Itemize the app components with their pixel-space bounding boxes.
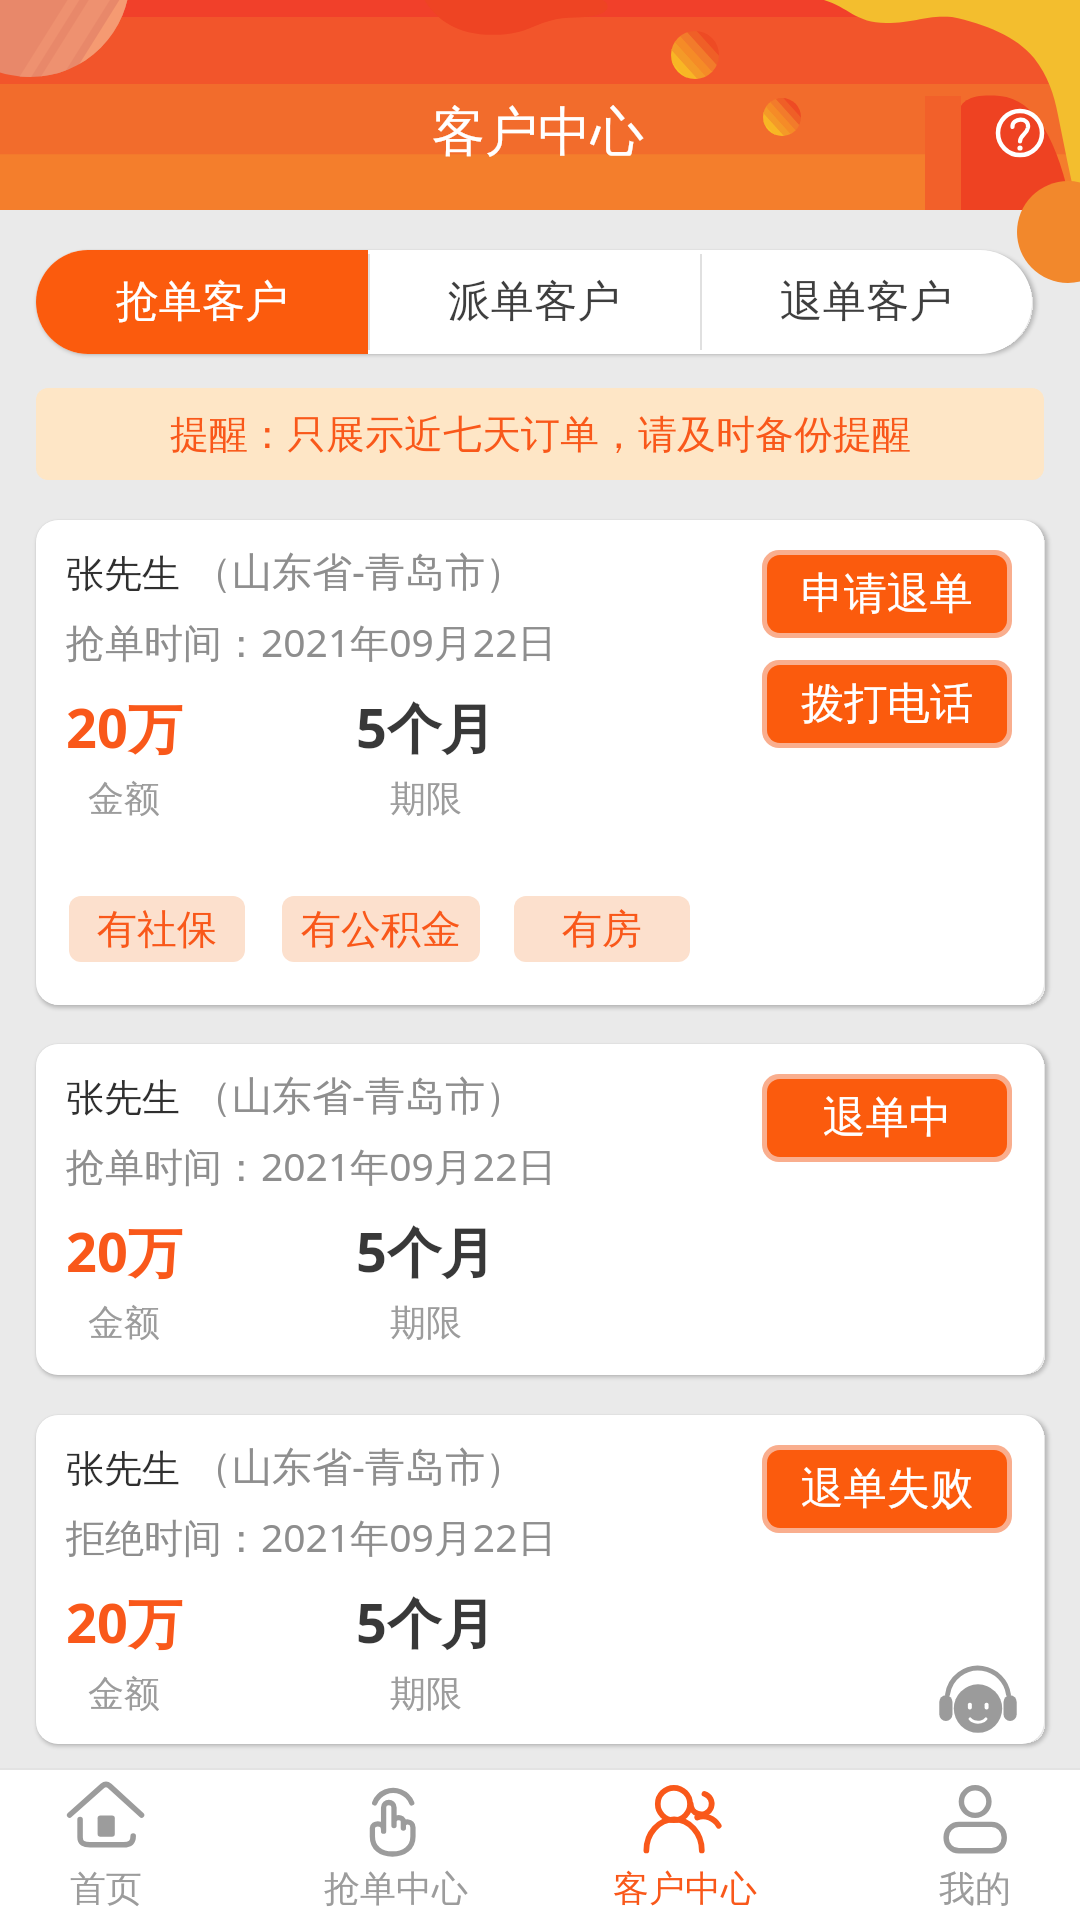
staticText: 期限 xyxy=(390,1300,462,1345)
button[interactable]: 首页 xyxy=(0,1770,211,1920)
button[interactable]: Help xyxy=(984,97,1056,169)
button[interactable]: 有公积金 xyxy=(301,896,461,962)
staticText: 期限 xyxy=(390,776,462,821)
staticText: 提醒：只展示近七天订单，请及时备份提醒 xyxy=(170,410,911,459)
staticText: 20万 xyxy=(66,690,182,764)
button[interactable]: 退单客户 xyxy=(700,250,1032,354)
button[interactable]: 退单失败 xyxy=(767,1450,1007,1528)
staticText: 20万 xyxy=(66,1585,182,1659)
staticText: 有房 xyxy=(562,904,642,954)
staticText: （山东省-青岛市） xyxy=(192,1438,525,1493)
button[interactable]: 有房 xyxy=(533,896,671,962)
staticText: 张先生 xyxy=(66,1074,180,1122)
button[interactable]: 派单客户 xyxy=(368,250,700,354)
staticText: 张先生 xyxy=(66,550,180,598)
staticText: 拨打电话 xyxy=(801,677,973,731)
staticText: 客户中心 xyxy=(432,99,644,166)
button[interactable]: 申请退单 xyxy=(767,555,1007,633)
button[interactable]: 我的 xyxy=(869,1770,1080,1920)
staticText: 我的 xyxy=(939,1866,1011,1911)
staticText: 派单客户 xyxy=(448,275,620,329)
staticText: 客户中心 xyxy=(613,1866,757,1911)
button[interactable]: 有社保 xyxy=(88,896,226,962)
button[interactable]: 退单中 xyxy=(767,1079,1007,1157)
button[interactable]: 客服 xyxy=(934,1654,1022,1742)
button[interactable]: 抢单中心 xyxy=(290,1770,501,1920)
staticText: 抢单中心 xyxy=(324,1866,468,1911)
staticText: 有公积金 xyxy=(301,904,461,954)
staticText: 抢单时间：2021年09月22日 xyxy=(66,615,557,668)
staticText: 退单客户 xyxy=(780,275,952,329)
staticText: 金额 xyxy=(88,1671,160,1716)
staticText: 5个月 xyxy=(356,690,495,764)
staticText: 抢单时间：2021年09月22日 xyxy=(66,1139,557,1192)
staticText: 20万 xyxy=(66,1214,182,1288)
staticText: （山东省-青岛市） xyxy=(192,1067,525,1122)
staticText: 金额 xyxy=(88,1300,160,1345)
staticText: 5个月 xyxy=(356,1585,495,1659)
staticText: 申请退单 xyxy=(801,567,973,621)
staticText: 退单中 xyxy=(823,1091,952,1145)
staticText: 金额 xyxy=(88,776,160,821)
button[interactable]: 拨打电话 xyxy=(767,665,1007,743)
staticText: 有社保 xyxy=(97,904,217,954)
staticText: 张先生 xyxy=(66,1445,180,1493)
staticText: 抢单客户 xyxy=(116,275,288,329)
staticText: 5个月 xyxy=(356,1214,495,1288)
staticText: （山东省-青岛市） xyxy=(192,543,525,598)
staticText: 拒绝时间：2021年09月22日 xyxy=(66,1510,557,1563)
staticText: 退单失败 xyxy=(801,1462,973,1516)
staticText: 首页 xyxy=(70,1866,142,1911)
button[interactable]: 抢单客户 xyxy=(36,250,368,354)
button[interactable]: 客户中心 xyxy=(579,1770,790,1920)
staticText: 期限 xyxy=(390,1671,462,1716)
